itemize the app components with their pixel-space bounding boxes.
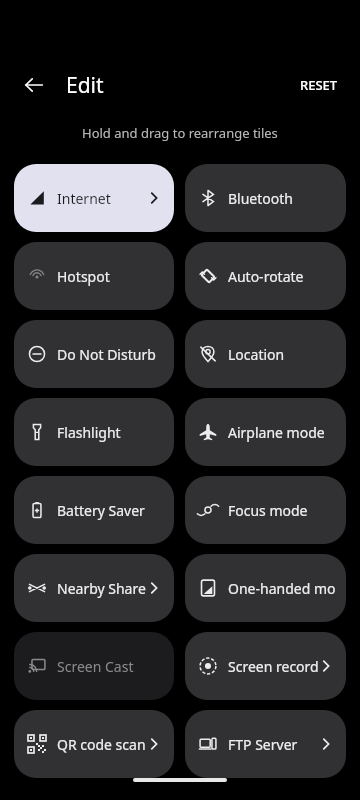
button[interactable]: Nearby Share bbox=[14, 554, 174, 622]
button[interactable]: FTP Server bbox=[185, 710, 346, 778]
staticText: Flashlight bbox=[57, 423, 164, 442]
staticText: Battery Saver bbox=[57, 501, 164, 520]
button[interactable]: Battery Saver bbox=[14, 476, 174, 544]
button[interactable]: Flashlight bbox=[14, 398, 174, 466]
staticText: RESET bbox=[300, 76, 338, 94]
staticText: Airplane mode bbox=[228, 423, 336, 442]
staticText: Hotspot bbox=[57, 267, 164, 286]
button[interactable]: Screen Cast bbox=[14, 632, 174, 700]
staticText: Edit bbox=[66, 71, 104, 100]
button[interactable]: Location bbox=[185, 320, 346, 388]
button[interactable]: Airplane mode bbox=[185, 398, 346, 466]
staticText: FTP Server bbox=[228, 735, 318, 754]
staticText: QR code scanner bbox=[57, 735, 146, 754]
staticText: Nearby Share bbox=[57, 579, 146, 598]
button[interactable]: Focus mode bbox=[185, 476, 346, 544]
staticText: Hold and drag to rearrange tiles bbox=[82, 124, 278, 142]
button[interactable]: RESET bbox=[288, 70, 350, 100]
button[interactable]: Back bbox=[16, 67, 52, 103]
button[interactable]: QR code scanner bbox=[14, 710, 174, 778]
button[interactable]: One-handed mode bbox=[185, 554, 346, 622]
button[interactable]: Internet bbox=[14, 164, 174, 232]
button[interactable]: Do Not Disturb bbox=[14, 320, 174, 388]
staticText: Focus mode bbox=[228, 501, 336, 520]
staticText: Bluetooth bbox=[228, 189, 336, 208]
button[interactable]: Auto-rotate bbox=[185, 242, 346, 310]
staticText: One-handed mode bbox=[228, 579, 336, 598]
staticText: Screen record bbox=[228, 657, 318, 676]
staticText: Auto-rotate bbox=[228, 267, 336, 286]
staticText: Internet bbox=[57, 189, 146, 208]
staticText: Location bbox=[228, 345, 336, 364]
button[interactable]: Hotspot bbox=[14, 242, 174, 310]
button[interactable]: Bluetooth bbox=[185, 164, 346, 232]
button[interactable]: Screen record bbox=[185, 632, 346, 700]
staticText: Do Not Disturb bbox=[57, 345, 164, 364]
staticText: Screen Cast bbox=[57, 657, 164, 676]
